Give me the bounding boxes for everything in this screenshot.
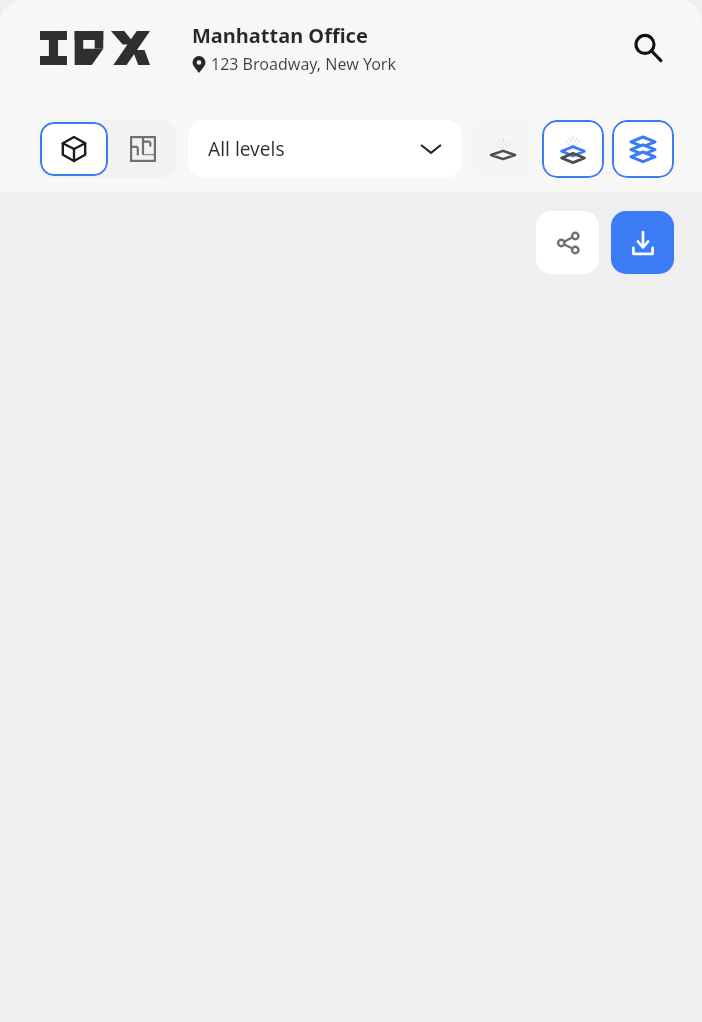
button[interactable]: Download <box>611 211 674 274</box>
button[interactable]: Floor plan view <box>110 120 176 178</box>
button[interactable]: Point cloud layer <box>472 120 534 178</box>
button[interactable]: All levels <box>188 120 462 178</box>
button[interactable]: Share <box>536 211 599 274</box>
button[interactable]: All layers <box>612 120 674 178</box>
button[interactable]: Mesh layer <box>542 120 604 178</box>
staticText: Manhattan Office <box>192 22 368 49</box>
button[interactable]: 3D view <box>40 122 108 176</box>
staticText: 123 Broadway, New York <box>211 53 397 75</box>
button[interactable]: Search <box>622 22 674 74</box>
staticText: All levels <box>208 136 420 162</box>
